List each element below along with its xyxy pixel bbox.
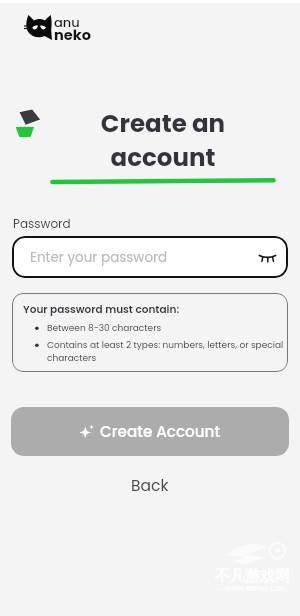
staticText: Create an account bbox=[83, 106, 243, 175]
staticText: Your password must contain: bbox=[23, 302, 180, 317]
staticText: Contains at least 2 types: numbers, lett… bbox=[47, 339, 288, 364]
button[interactable]: anu bbox=[22, 12, 92, 44]
button[interactable]: Create Account bbox=[11, 407, 289, 456]
staticText: Between 8-30 characters bbox=[47, 322, 162, 335]
staticText: WWW.BUFAN.COM bbox=[225, 584, 285, 594]
staticText: Create Account bbox=[100, 421, 221, 442]
staticText: 不凡游戏网 bbox=[215, 567, 290, 586]
staticText: Enter your password bbox=[30, 248, 168, 267]
staticText: neko bbox=[54, 25, 91, 45]
staticText: anu bbox=[54, 13, 80, 31]
staticText: Password bbox=[13, 215, 71, 232]
button[interactable]: Enter your password bbox=[12, 236, 288, 278]
button[interactable]: Back bbox=[113, 470, 187, 502]
button[interactable]: Show password bbox=[254, 244, 281, 271]
